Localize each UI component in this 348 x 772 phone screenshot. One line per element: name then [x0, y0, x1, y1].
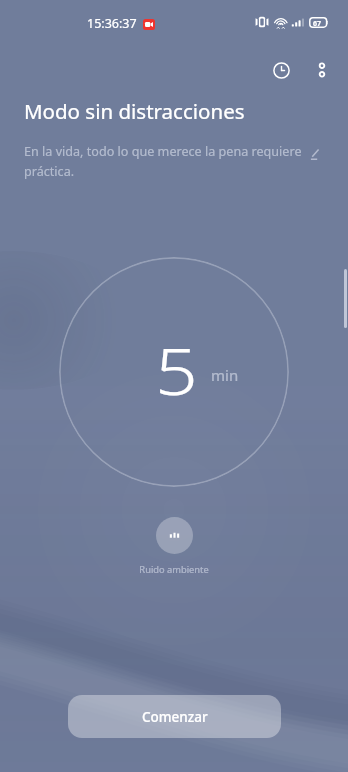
button[interactable]: Ambient noise	[156, 517, 193, 554]
button[interactable]: Comenzar	[68, 695, 281, 738]
staticText: 5	[155, 327, 198, 414]
staticText: min	[211, 365, 239, 385]
button[interactable]	[59, 257, 289, 487]
button[interactable]: More options	[302, 50, 342, 90]
staticText: Modo sin distracciones	[24, 97, 245, 125]
staticText: En la vida, todo lo que merece la pena r…	[24, 143, 309, 180]
staticText: Ruido ambiente	[139, 563, 209, 576]
button[interactable]: Edit quote	[303, 143, 325, 165]
button[interactable]: History	[261, 50, 301, 90]
staticText: 15:36:37	[87, 15, 137, 32]
staticText: 67	[313, 19, 322, 29]
staticText: Comenzar	[142, 708, 208, 726]
